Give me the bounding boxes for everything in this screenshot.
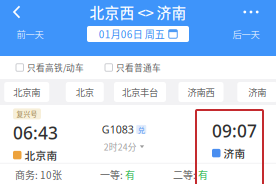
staticText: 二等: — [173, 167, 198, 182]
button[interactable]: 北京南 — [4, 82, 49, 102]
staticText: 有 — [125, 167, 135, 182]
button[interactable]: 北京丰台 — [114, 82, 166, 102]
staticText: 2时24分 — [104, 140, 137, 153]
staticText: 北京西 <> 济南 — [89, 1, 186, 23]
staticText: 北京南 — [13, 85, 40, 99]
staticText: 济南 — [223, 145, 245, 161]
staticText: 济南西 — [187, 85, 214, 99]
staticText: 兑 — [138, 124, 145, 135]
staticText: 一等: — [100, 167, 125, 182]
staticText: 09:07 — [212, 119, 257, 142]
button[interactable]: 后一天 — [223, 25, 269, 43]
button[interactable]: 北京 — [66, 82, 104, 102]
button[interactable]: 济南西 — [178, 82, 223, 102]
button[interactable]: 返回 — [5, 0, 29, 24]
staticText: 01月06日 周五 — [99, 27, 165, 41]
staticText: 有 — [198, 167, 208, 182]
staticText: 06:43 — [13, 121, 58, 144]
button[interactable]: 前一天 — [7, 25, 53, 43]
button[interactable]: 只看高铁/动车 — [16, 59, 84, 75]
staticText: 济南 — [248, 85, 266, 99]
button[interactable]: 济南 — [237, 82, 276, 102]
button[interactable]: 只看普通车 — [105, 59, 161, 75]
staticText: 前一天 — [16, 27, 43, 41]
staticText: 只看高铁/动车 — [27, 61, 84, 74]
button[interactable]: 更多 — [236, 0, 266, 24]
staticText: 后一天 — [232, 27, 259, 41]
staticText: 只看普通车 — [116, 61, 161, 74]
staticText: 复兴号 — [16, 109, 37, 119]
staticText: 北京南 — [24, 147, 57, 163]
staticText: 北京丰台 — [122, 85, 158, 99]
staticText: 北京 — [76, 85, 94, 99]
staticText: 商务: 10张 — [15, 167, 62, 182]
button[interactable]: 01月06日 周五 — [87, 26, 189, 42]
staticText: G1083 — [102, 122, 134, 137]
